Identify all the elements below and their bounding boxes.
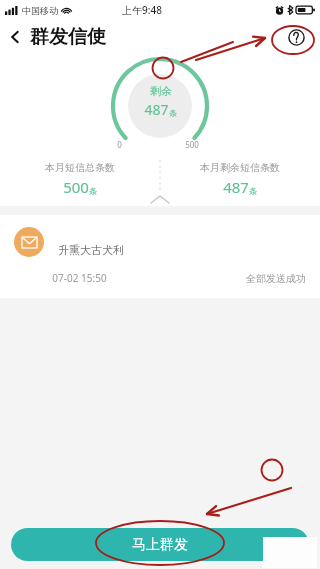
staticText: 中国移动: [22, 5, 58, 16]
button[interactable]: 马上群发: [11, 528, 309, 561]
staticText: 本月短信总条数: [45, 161, 115, 174]
button[interactable]: 本月短信总条数: [0, 161, 160, 197]
staticText: 07-02 15:50: [52, 271, 107, 285]
staticText: 马上群发: [132, 536, 188, 554]
staticText: 本月剩余短信条数: [200, 161, 280, 174]
button[interactable]: Help: [284, 25, 308, 49]
staticText: 条: [249, 186, 257, 196]
staticText: 上午9:48: [122, 3, 162, 17]
staticText: 487: [223, 177, 249, 197]
staticText: 条: [89, 186, 97, 196]
staticText: 群发信使: [30, 25, 106, 49]
staticText: 0: [117, 139, 122, 150]
staticText: 全部发送成功: [246, 272, 306, 285]
button[interactable]: 本月剩余短信条数: [160, 161, 320, 197]
staticText: 487: [144, 100, 169, 119]
staticText: 升熏大古犬利: [58, 243, 124, 257]
button[interactable]: 升熏大古犬利: [0, 215, 320, 298]
staticText: 500: [63, 177, 89, 197]
staticText: 条: [169, 108, 177, 118]
staticText: 500: [185, 139, 199, 150]
staticText: 剩余: [150, 84, 172, 98]
button[interactable]: Back: [0, 22, 30, 52]
